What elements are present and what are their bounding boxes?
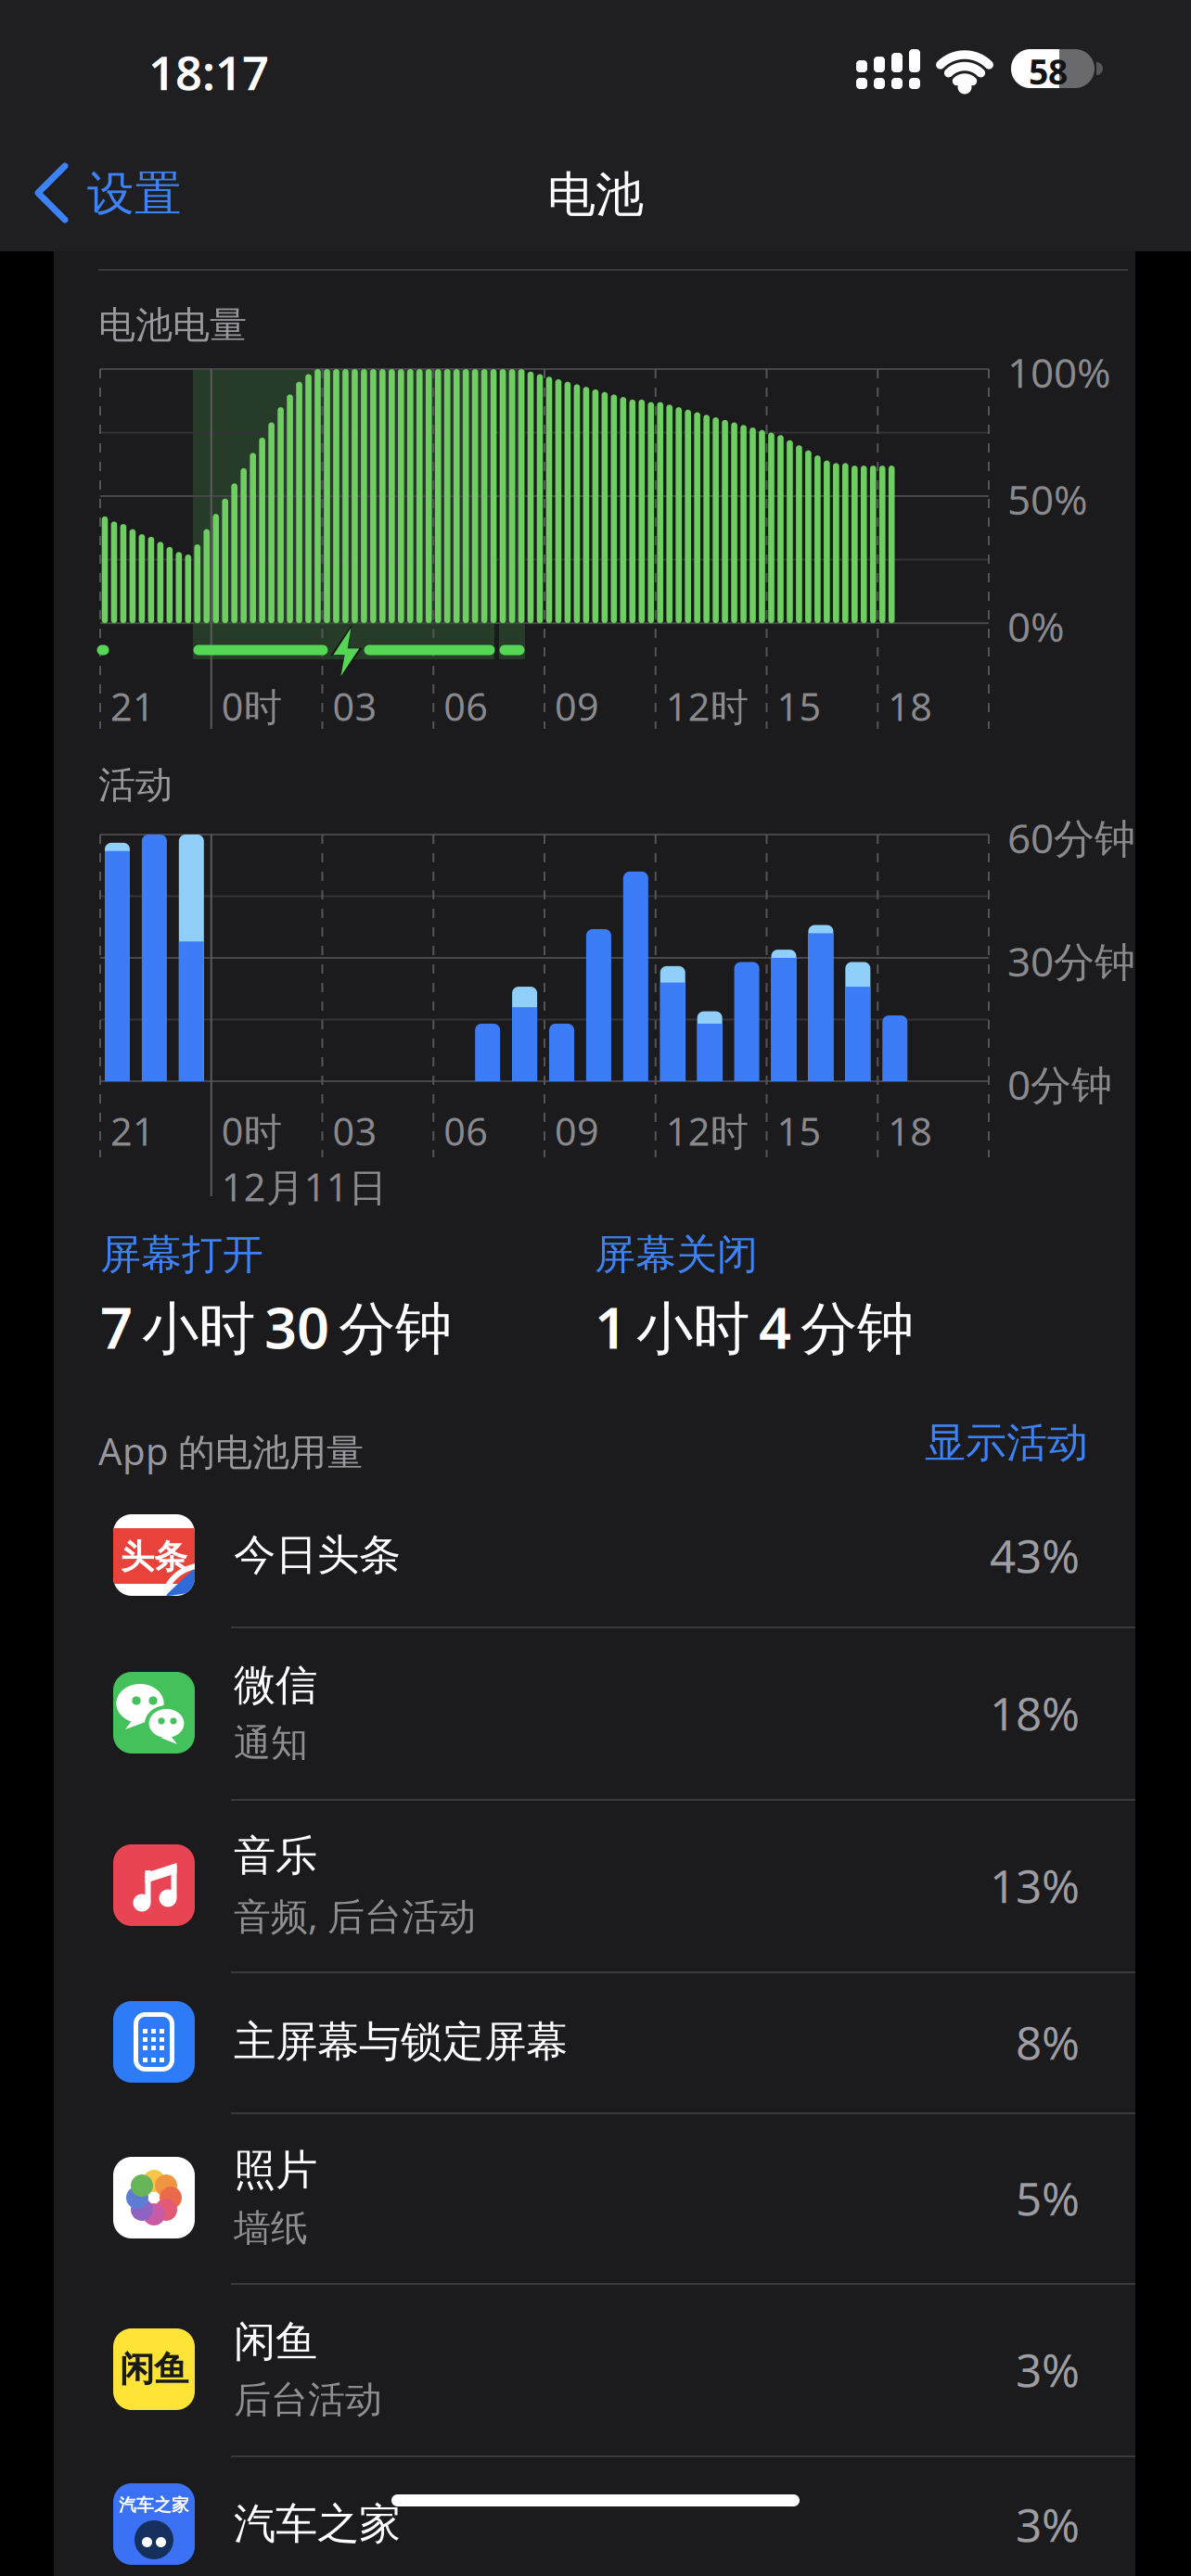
staticText: 30分钟: [1007, 934, 1135, 988]
staticText: 闲鱼: [234, 2316, 317, 2368]
button[interactable]: 头条: [54, 1484, 1135, 1626]
staticText: 设置: [87, 165, 182, 223]
staticText: 0分钟: [1007, 1057, 1112, 1111]
staticText: 3%: [1016, 2339, 1080, 2400]
staticText: 3%: [1016, 2494, 1080, 2554]
button[interactable]: 汽车之家: [54, 2455, 1135, 2576]
staticText: 今日头条: [234, 1529, 401, 1581]
staticText: 8%: [1016, 2011, 1080, 2072]
staticText: 06: [444, 1105, 488, 1156]
staticText: 58: [1029, 48, 1068, 94]
staticText: 03: [333, 1105, 377, 1156]
staticText: 闲鱼: [120, 2348, 188, 2391]
staticText: 电池: [547, 165, 644, 224]
staticText: 0时: [222, 681, 282, 732]
staticText: 18: [888, 681, 932, 732]
staticText: 通知: [234, 1720, 308, 1766]
staticText: App 的电池用量: [98, 1426, 364, 1476]
staticText: 50%: [1007, 472, 1088, 526]
button[interactable]: 照片: [54, 2112, 1135, 2283]
staticText: 100%: [1007, 345, 1111, 399]
staticText: 12时: [666, 681, 748, 732]
button[interactable]: 闲鱼: [54, 2283, 1135, 2455]
staticText: 墙纸: [234, 2205, 308, 2251]
staticText: 12时: [666, 1105, 748, 1156]
staticText: 音频, 后台活动: [234, 1891, 476, 1940]
staticText: 18:17: [148, 41, 269, 103]
staticText: 屏幕打开: [100, 1230, 263, 1280]
staticText: 09: [555, 1105, 599, 1156]
staticText: 43%: [990, 1525, 1080, 1585]
staticText: 7 小时 30 分钟: [100, 1289, 452, 1364]
staticText: 微信: [234, 1659, 317, 1711]
staticText: 显示活动: [925, 1418, 1088, 1468]
staticText: 后台活动: [234, 2377, 382, 2422]
staticText: 21: [110, 1105, 155, 1156]
staticText: 0%: [1007, 599, 1065, 653]
staticText: 5%: [1016, 2167, 1080, 2228]
staticText: 09: [555, 681, 599, 732]
staticText: 照片: [234, 2144, 317, 2196]
staticText: 汽车之家: [234, 2498, 401, 2550]
staticText: 屏幕关闭: [595, 1230, 758, 1280]
staticText: 21: [110, 681, 155, 732]
staticText: 电池电量: [98, 302, 247, 348]
staticText: 18: [888, 1105, 932, 1156]
staticText: 15: [777, 681, 821, 732]
staticText: 13%: [990, 1855, 1080, 1915]
button[interactable]: 返回设置: [0, 0, 213, 93]
staticText: 音乐: [234, 1830, 317, 1882]
button[interactable]: 微信: [54, 1626, 1135, 1799]
staticText: 15: [777, 1105, 821, 1156]
staticText: 12月11日: [222, 1161, 387, 1212]
staticText: 03: [333, 681, 377, 732]
staticText: 主屏幕与锁定屏幕: [234, 2016, 568, 2068]
staticText: 汽车之家: [119, 2494, 189, 2516]
button[interactable]: 显示活动: [925, 1418, 1088, 1468]
staticText: 活动: [98, 762, 173, 808]
staticText: 60分钟: [1007, 810, 1135, 865]
staticText: 头条: [121, 1537, 187, 1577]
staticText: 18%: [990, 1682, 1080, 1743]
staticText: 06: [444, 681, 488, 732]
staticText: 0时: [222, 1105, 282, 1156]
button[interactable]: 主屏幕与锁定屏幕: [54, 1971, 1135, 2112]
staticText: 1 小时 4 分钟: [595, 1289, 914, 1364]
button[interactable]: 音乐: [54, 1799, 1135, 1971]
